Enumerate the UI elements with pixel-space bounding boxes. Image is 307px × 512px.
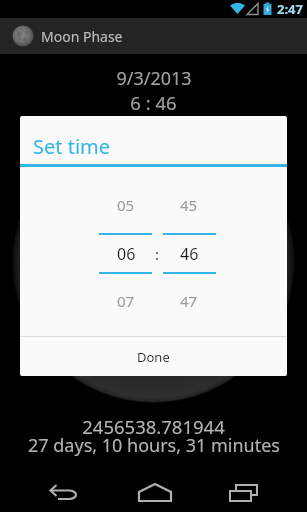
staticText: 9/3/2013 <box>116 66 192 90</box>
staticText: 47 <box>180 291 198 311</box>
staticText: Set time <box>33 133 111 157</box>
staticText: 07 <box>117 291 135 311</box>
staticText: 06 <box>117 243 136 265</box>
staticText: 05 <box>117 195 135 215</box>
staticText: 45 <box>180 195 198 215</box>
staticText: 6 : 46 <box>130 90 177 114</box>
button[interactable]: 06 <box>96 242 156 266</box>
staticText: 27 days, 10 hours, 31 minutes <box>28 433 280 457</box>
staticText: Done <box>137 348 170 366</box>
button[interactable]: 07 <box>96 289 156 313</box>
button[interactable]: 05 <box>96 193 156 217</box>
button[interactable]: 47 <box>159 289 219 313</box>
button[interactable]: Moon Phase <box>0 18 307 54</box>
button[interactable]: 46 <box>159 242 219 266</box>
button[interactable]: 45 <box>159 193 219 217</box>
button[interactable] <box>219 465 271 512</box>
staticText: 46 <box>180 243 199 265</box>
staticText: Moon Phase <box>41 27 123 46</box>
button[interactable]: Done <box>20 337 287 376</box>
staticText: : <box>155 244 160 264</box>
button[interactable] <box>36 465 88 512</box>
staticText: 2456538.781944 <box>82 414 225 438</box>
staticText: 2:47 <box>277 0 303 18</box>
button[interactable] <box>129 465 181 512</box>
